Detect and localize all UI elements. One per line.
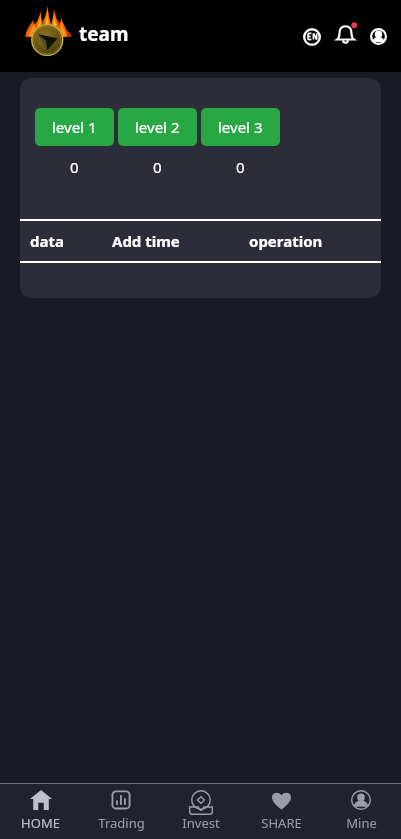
staticText: level 3 xyxy=(218,117,263,137)
staticText: level 2 xyxy=(135,117,180,137)
staticText: team xyxy=(79,21,129,47)
button[interactable]: Profile xyxy=(363,21,394,52)
staticText: HOME xyxy=(21,814,60,832)
button[interactable]: SHARE xyxy=(241,784,321,839)
button[interactable]: Mine xyxy=(321,784,401,839)
button[interactable]: level 1 xyxy=(35,108,114,146)
staticText: 0 xyxy=(70,157,79,177)
staticText: SHARE xyxy=(261,814,302,832)
button[interactable]: Language EN xyxy=(296,21,327,52)
staticText: Invest xyxy=(182,814,220,832)
button[interactable]: Invest xyxy=(161,784,241,839)
button[interactable]: Notifications xyxy=(330,19,361,50)
staticText: Trading xyxy=(98,814,145,832)
staticText: level 1 xyxy=(52,117,97,137)
button[interactable]: HOME xyxy=(0,784,81,839)
button[interactable]: level 3 xyxy=(201,108,280,146)
staticText: 0 xyxy=(153,157,162,177)
button[interactable]: Trading xyxy=(81,784,161,839)
staticText: operation xyxy=(249,231,323,251)
staticText: Mine xyxy=(346,814,377,832)
staticText: Add time xyxy=(112,231,180,251)
staticText: 0 xyxy=(236,157,245,177)
staticText: data xyxy=(30,231,64,251)
button[interactable]: level 2 xyxy=(118,108,197,146)
